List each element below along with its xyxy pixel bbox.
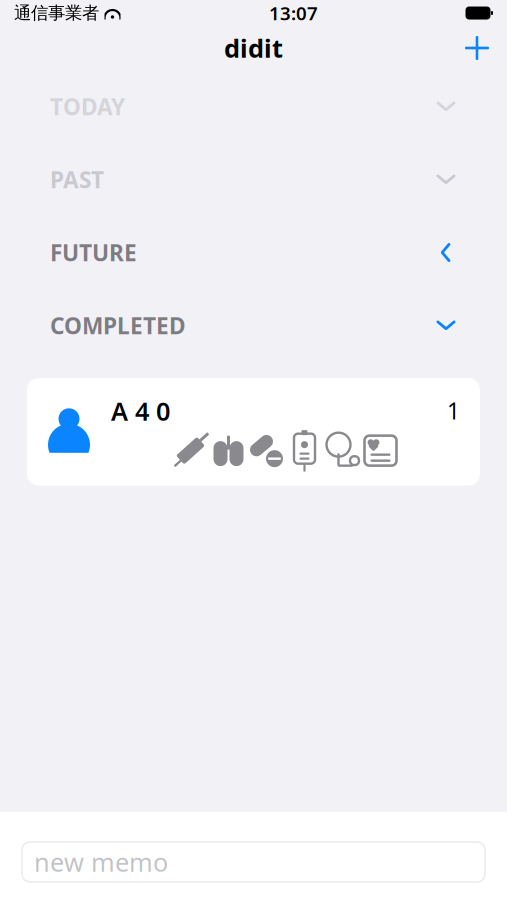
button[interactable]: PAST — [0, 143, 507, 216]
staticText: didit — [224, 31, 283, 65]
button[interactable]: COMPLETED — [0, 289, 507, 362]
staticText: FUTURE — [50, 237, 137, 267]
button[interactable]: A 4 0 — [27, 378, 480, 486]
button[interactable]: new memo — [22, 842, 485, 882]
staticText: TODAY — [50, 91, 125, 121]
button[interactable]: FUTURE — [0, 216, 507, 289]
staticText: 13:07 — [269, 1, 318, 25]
button[interactable]: Add — [455, 26, 499, 70]
staticText: A 4 0 — [111, 394, 170, 428]
staticText: 1 — [447, 396, 460, 426]
staticText: 通信事業者 — [14, 2, 99, 24]
staticText: PAST — [50, 164, 104, 194]
button[interactable]: TODAY — [0, 70, 507, 143]
staticText: new memo — [34, 845, 168, 879]
staticText: COMPLETED — [50, 310, 186, 340]
